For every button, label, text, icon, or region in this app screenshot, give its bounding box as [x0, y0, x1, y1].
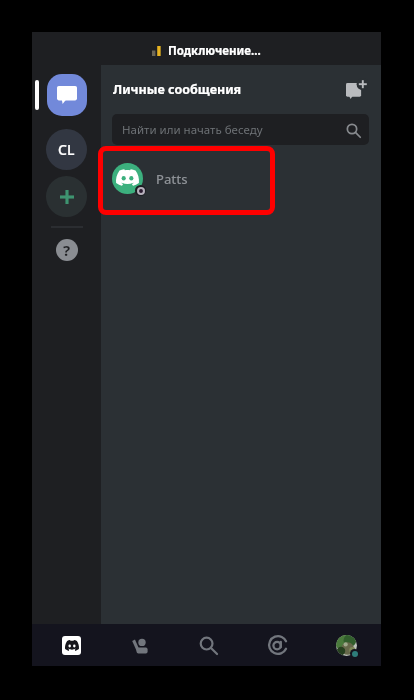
button[interactable]: CL — [46, 129, 87, 170]
staticText: ? — [63, 240, 71, 260]
staticText: Найти или начать беседу — [122, 122, 263, 138]
button[interactable]: Patts — [108, 154, 374, 203]
staticText: CL — [58, 140, 75, 159]
button[interactable]: Profile — [312, 624, 381, 666]
staticText: Личные сообщения — [113, 81, 242, 98]
button[interactable]: Mentions — [243, 624, 312, 666]
button[interactable]: Найти или начать беседу — [112, 114, 369, 145]
button[interactable]: Help — [56, 239, 78, 261]
button[interactable]: New direct message — [345, 78, 367, 100]
staticText: Patts — [156, 170, 188, 188]
button[interactable]: Add a server — [46, 176, 87, 217]
button[interactable]: Friends — [105, 624, 174, 666]
button[interactable]: Servers — [37, 624, 105, 666]
button[interactable]: Direct messages — [47, 74, 87, 116]
button[interactable]: Search — [174, 624, 243, 666]
staticText: Подключение... — [168, 43, 261, 59]
